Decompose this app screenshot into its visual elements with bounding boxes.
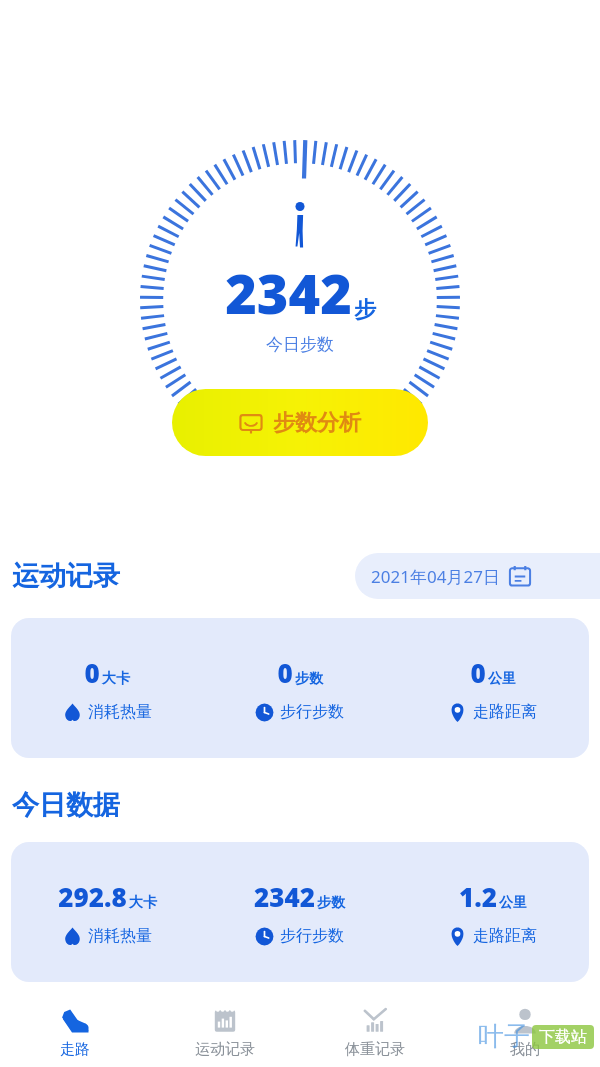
staticText: 运动记录	[195, 1040, 255, 1059]
button[interactable]: 2021年04月27日	[355, 553, 600, 599]
staticText: 我的	[510, 1040, 540, 1059]
button[interactable]: 运动记录	[150, 997, 300, 1067]
button[interactable]: 体重记录	[300, 997, 450, 1067]
staticText: 今日步数	[266, 334, 334, 355]
button[interactable]: 0	[11, 618, 589, 758]
staticText: 步	[354, 296, 376, 324]
staticText: 公里	[488, 670, 516, 688]
button[interactable]: 我的	[450, 997, 600, 1067]
staticText: 运动记录	[12, 559, 120, 593]
staticText: 公里	[499, 894, 527, 912]
staticText: 步数分析	[273, 409, 361, 437]
staticText: 2342	[254, 879, 315, 914]
staticText: 0	[470, 655, 486, 690]
button[interactable]: 走路	[0, 997, 150, 1067]
staticText: 步行步数	[280, 702, 344, 722]
staticText: 大卡	[102, 670, 130, 688]
staticText: 叶子	[478, 1020, 530, 1053]
staticText: 大卡	[129, 894, 157, 912]
staticText: 走路距离	[473, 926, 537, 946]
staticText: 2342	[225, 256, 352, 330]
staticText: 0	[277, 655, 293, 690]
staticText: 消耗热量	[88, 926, 152, 946]
staticText: 0	[84, 655, 100, 690]
button[interactable]: 步数分析	[172, 389, 428, 456]
staticText: 步数	[317, 894, 345, 912]
staticText: 下载站	[539, 1027, 587, 1047]
staticText: 走路距离	[473, 702, 537, 722]
staticText: 2021年04月27日	[371, 565, 500, 588]
staticText: 1.2	[459, 879, 497, 914]
staticText: 体重记录	[345, 1040, 405, 1059]
staticText: 消耗热量	[88, 702, 152, 722]
staticText: 步数	[295, 670, 323, 688]
staticText: 今日数据	[12, 788, 120, 822]
staticText: 步行步数	[280, 926, 344, 946]
staticText: 走路	[60, 1040, 90, 1059]
button[interactable]: 292.8	[11, 842, 589, 982]
staticText: 292.8	[58, 879, 127, 914]
